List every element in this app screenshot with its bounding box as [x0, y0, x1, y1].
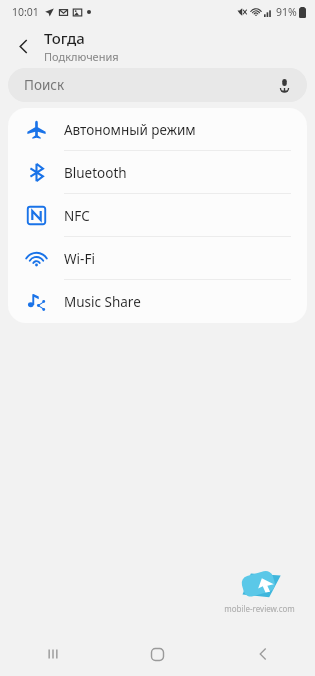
- staticText: NFC: [64, 207, 90, 225]
- staticText: Поиск: [24, 76, 65, 94]
- staticText: mobile-review.com: [224, 603, 295, 614]
- staticText: 10:01: [12, 5, 39, 19]
- button[interactable]: Recent apps: [0, 632, 105, 676]
- button[interactable]: Voice search: [271, 72, 297, 98]
- button[interactable]: Back: [6, 29, 40, 63]
- staticText: Bluetooth: [64, 164, 127, 182]
- staticText: Music Share: [64, 293, 141, 311]
- button[interactable]: Home: [105, 632, 210, 676]
- staticText: Автономный режим: [64, 121, 196, 139]
- button[interactable]: Music Share: [8, 280, 307, 323]
- button[interactable]: Wi-Fi: [8, 237, 307, 280]
- staticText: Wi-Fi: [64, 250, 95, 268]
- staticText: Подключения: [44, 49, 119, 64]
- button[interactable]: Поиск: [8, 68, 307, 102]
- button[interactable]: NFC: [8, 194, 307, 237]
- staticText: 91%: [276, 5, 297, 19]
- button[interactable]: Back: [210, 632, 315, 676]
- staticText: Тогда: [44, 28, 85, 48]
- button[interactable]: Bluetooth: [8, 151, 307, 194]
- button[interactable]: Автономный режим: [8, 108, 307, 151]
